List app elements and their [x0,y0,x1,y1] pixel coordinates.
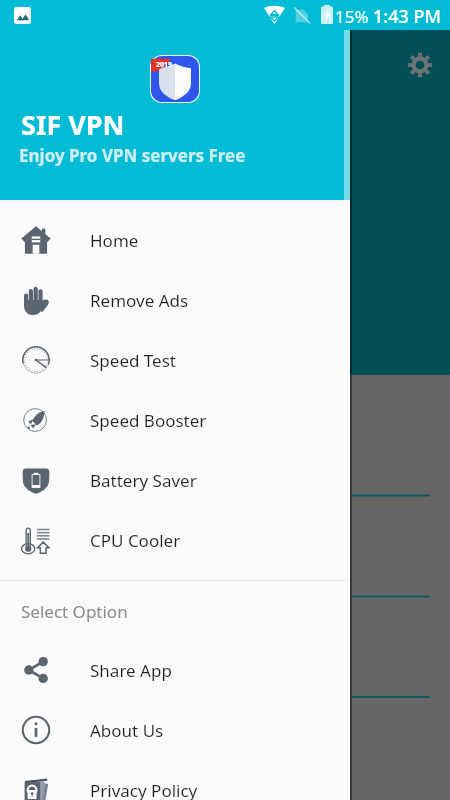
button[interactable]: Home [0,210,350,270]
button[interactable]: Settings [406,51,434,79]
button[interactable]: CPU Cooler [0,510,350,570]
staticText: Enjoy Pro VPN servers Free [19,144,246,167]
staticText: Home [90,229,139,252]
staticText: SIF VPN [21,106,125,143]
staticText: Battery Saver [90,469,197,492]
staticText: 15% [335,5,369,28]
button[interactable]: Privacy Policy [0,760,350,800]
button[interactable]: Speed Booster [0,390,350,450]
button[interactable]: About Us [0,700,350,760]
staticText: 1:43 PM [373,4,441,29]
staticText: Remove Ads [90,289,189,312]
staticText: Share App [90,659,172,682]
button[interactable]: Battery Saver [0,450,350,510]
button[interactable]: Remove Ads [0,270,350,330]
staticText: CPU Cooler [90,529,181,552]
button[interactable]: Speed Test [0,330,350,390]
staticText: 2019 [156,60,173,70]
staticText: Select Option [21,600,128,623]
staticText: Privacy Policy [90,779,198,800]
button[interactable]: Share App [0,640,350,700]
staticText: About Us [90,719,164,742]
staticText: Speed Test [90,349,176,372]
staticText: Speed Booster [90,409,207,432]
